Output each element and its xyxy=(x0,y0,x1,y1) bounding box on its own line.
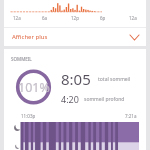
staticText: 8:05 xyxy=(61,69,91,89)
staticText: 12a xyxy=(129,15,137,21)
staticText: 12p xyxy=(71,15,79,21)
staticText: sommeil profond xyxy=(84,96,125,103)
staticText: total sommeil xyxy=(98,76,131,83)
staticText: SOMMEIL xyxy=(11,56,32,62)
staticText: 7:21a xyxy=(125,113,137,119)
staticText: 101% xyxy=(18,79,50,96)
button[interactable]: Afficher plus xyxy=(4,28,146,46)
staticText: 6a xyxy=(42,15,48,21)
other: Light sleep xyxy=(13,123,22,132)
staticText: 4:20 xyxy=(61,93,79,105)
other: Deep sleep xyxy=(14,143,21,150)
staticText: 11:03p xyxy=(21,113,36,119)
staticText: 12a xyxy=(13,15,21,21)
staticText: Afficher plus xyxy=(12,33,48,41)
staticText: 6p xyxy=(100,15,106,21)
